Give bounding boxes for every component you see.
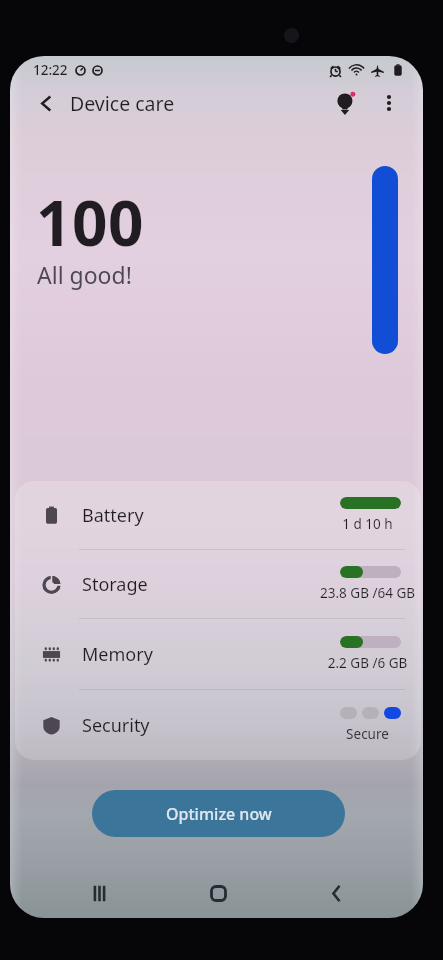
button[interactable]: Memory	[15, 619, 421, 689]
button[interactable]: Navigate up	[30, 87, 62, 119]
button[interactable]: More options	[371, 85, 407, 121]
button[interactable]: Back	[278, 869, 397, 917]
button[interactable]: Optimize now	[92, 790, 345, 837]
button[interactable]: Tips	[329, 85, 365, 121]
staticText: Secure	[317, 725, 418, 743]
staticText: Device care	[70, 90, 175, 117]
button[interactable]: Recent apps	[40, 869, 159, 917]
button[interactable]: Battery	[15, 481, 421, 549]
staticText: 1 d 10 h	[317, 515, 418, 533]
staticText: Memory	[82, 642, 153, 667]
staticText: Security	[82, 713, 150, 738]
staticText: 2.2 GB /6 GB	[317, 654, 418, 672]
button[interactable]: Storage	[15, 550, 421, 618]
staticText: 100	[36, 180, 144, 264]
button[interactable]: Home	[159, 869, 278, 917]
staticText: Storage	[82, 572, 148, 597]
staticText: 12:22	[33, 61, 68, 79]
button[interactable]: Security	[15, 690, 421, 760]
staticText: 23.8 GB /64 GB	[317, 584, 418, 602]
staticText: All good!	[37, 259, 132, 290]
staticText: Battery	[82, 503, 144, 528]
staticText: Optimize now	[166, 803, 272, 825]
